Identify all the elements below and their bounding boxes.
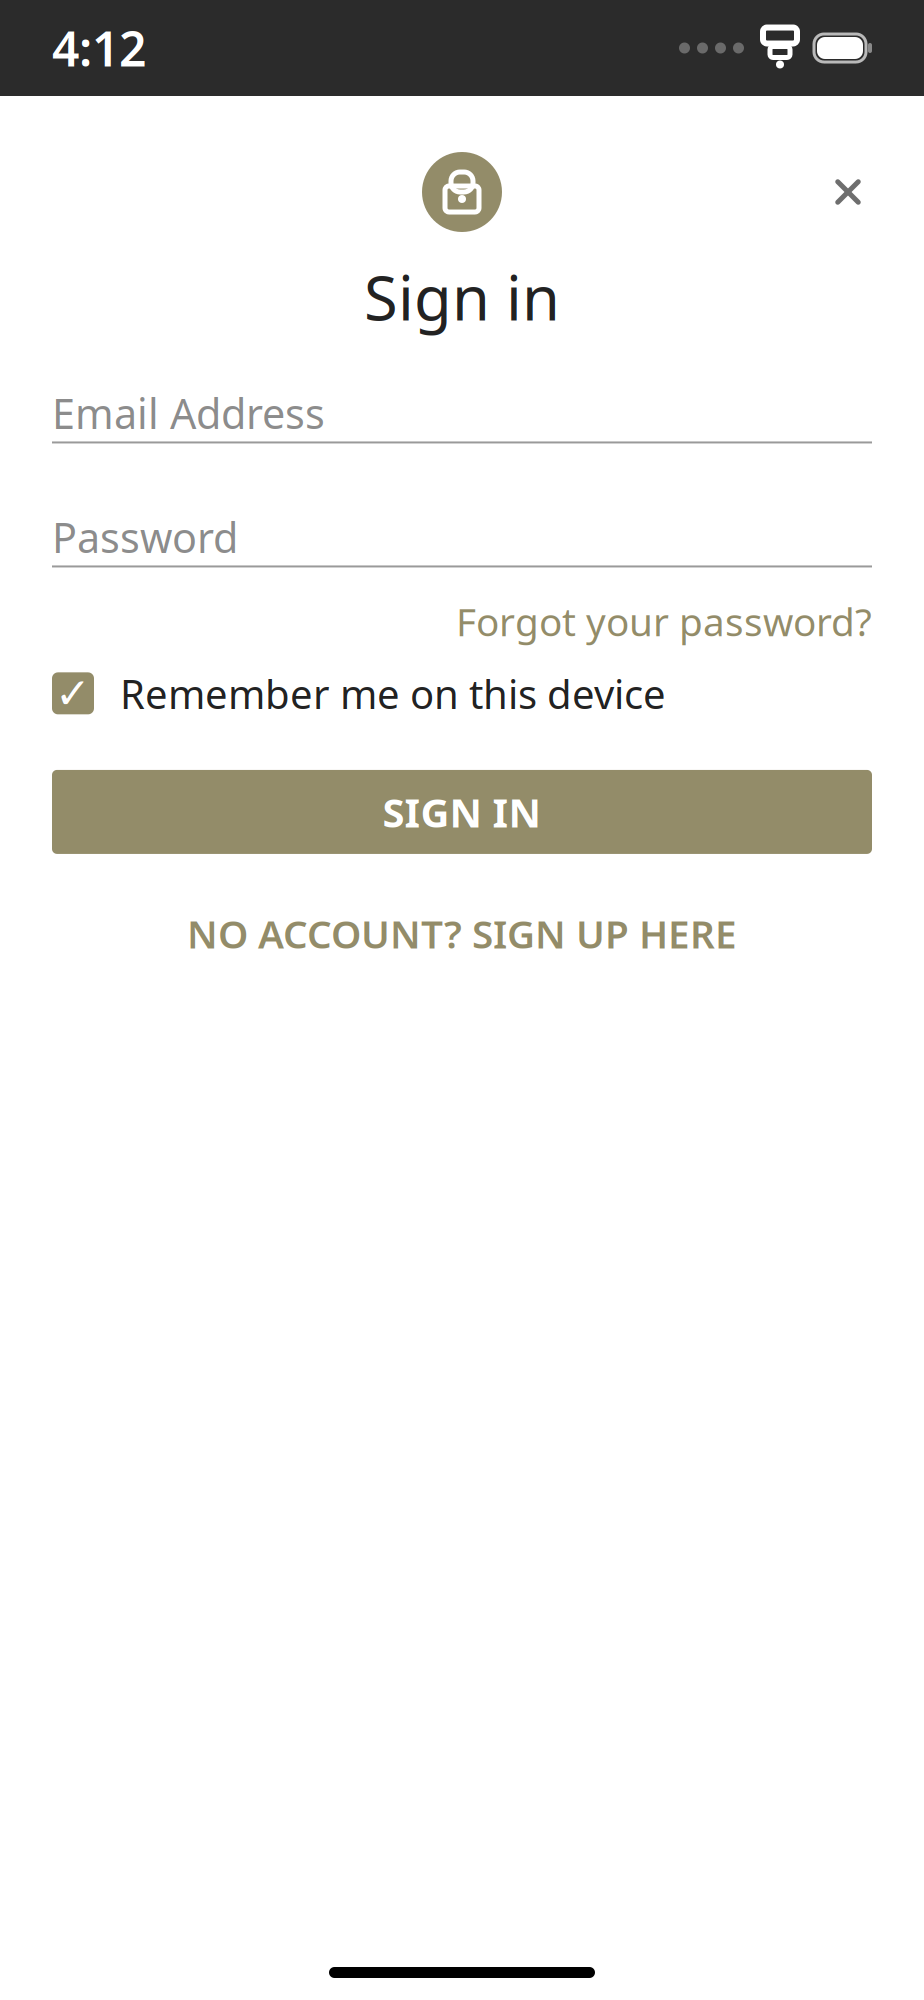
button[interactable]: ✓ bbox=[0, 667, 924, 720]
button[interactable]: SIGN IN bbox=[0, 770, 924, 854]
button[interactable]: Forgot your password? bbox=[456, 595, 872, 647]
staticText: 4:12 bbox=[52, 16, 146, 80]
staticText: Remember me on this device bbox=[120, 667, 666, 720]
staticText: NO ACCOUNT? SIGN UP HERE bbox=[187, 908, 737, 959]
staticText: Forgot your password? bbox=[456, 595, 872, 647]
staticText: ✓ bbox=[55, 669, 91, 717]
button[interactable]: NO ACCOUNT? SIGN UP HERE bbox=[0, 886, 924, 981]
button[interactable]: Close bbox=[812, 156, 884, 228]
staticText: Password bbox=[52, 509, 238, 564]
staticText: Email Address bbox=[52, 385, 325, 440]
staticText: Sign in bbox=[364, 256, 560, 337]
staticText: SIGN IN bbox=[382, 785, 541, 838]
